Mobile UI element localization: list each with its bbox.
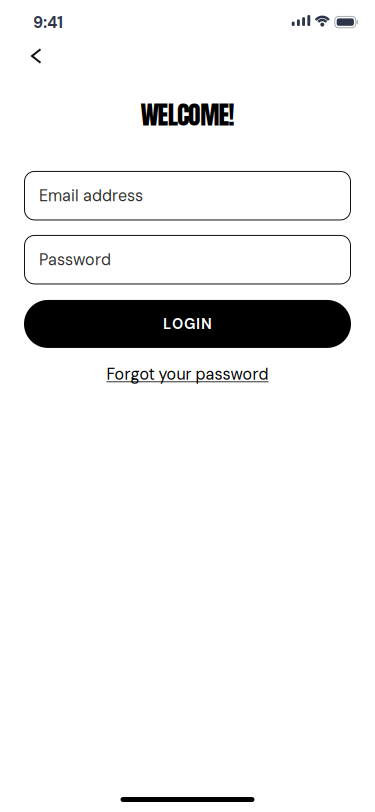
staticText: WELCOME! [140, 95, 235, 134]
textField[interactable]: Password [39, 249, 351, 270]
button[interactable]: Back [0, 44, 52, 68]
staticText: Email address [39, 185, 143, 206]
button[interactable]: LOGIN [24, 300, 351, 348]
staticText: L [163, 314, 171, 333]
staticText: Forgot your password [106, 364, 268, 385]
textField[interactable]: Email address [39, 185, 351, 206]
button[interactable]: Forgot your password [106, 364, 268, 385]
staticText: N [201, 314, 212, 333]
staticText: O [172, 314, 183, 333]
staticText: G [184, 314, 195, 333]
staticText: I [196, 314, 200, 333]
staticText: 9:41 [33, 12, 63, 33]
staticText: Password [39, 249, 111, 270]
